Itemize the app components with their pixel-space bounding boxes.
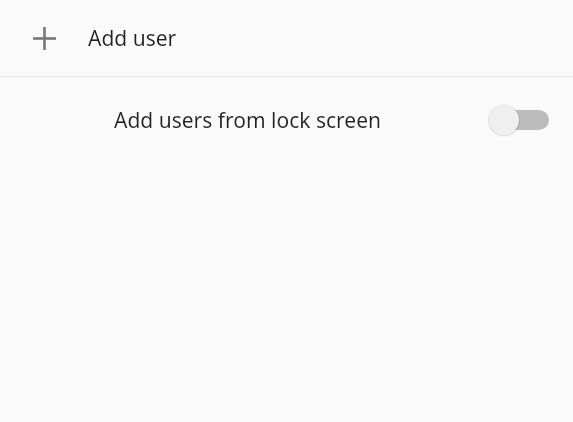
button[interactable]: Add users from lock screen [0, 77, 573, 163]
staticText: Add user [88, 24, 177, 53]
button[interactable]: Add user [0, 0, 573, 76]
staticText: Add users from lock screen [114, 106, 381, 135]
button[interactable]: Add users from lock screen toggle, off [487, 98, 551, 142]
